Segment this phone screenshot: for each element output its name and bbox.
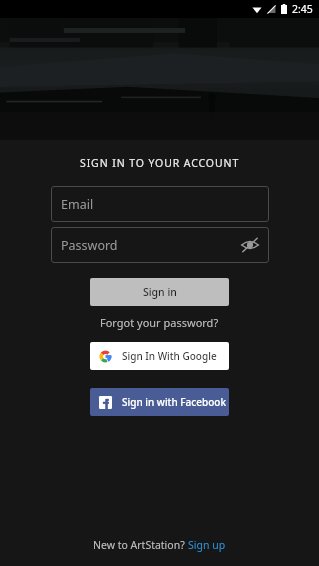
button[interactable]: Show password [239, 234, 261, 256]
button[interactable]: Sign up [188, 538, 226, 552]
button[interactable]: Password [51, 227, 269, 263]
staticText: Sign in with Facebook [122, 395, 226, 409]
staticText: Sign in [143, 285, 177, 299]
button[interactable]: Sign in with Facebook [90, 388, 229, 416]
button[interactable]: Sign in [90, 278, 229, 306]
staticText: Forgot your password? [100, 315, 219, 330]
button[interactable]: Sign In With Google [90, 342, 229, 370]
button[interactable]: Email [51, 186, 269, 222]
staticText: Password [61, 237, 118, 254]
button[interactable]: Forgot your password? [96, 313, 223, 332]
staticText: 2:45 [292, 2, 313, 16]
staticText: Email [61, 196, 94, 213]
staticText: New to ArtStation? [93, 538, 188, 552]
staticText: Sign In With Google [122, 349, 217, 363]
staticText: SIGN IN TO YOUR ACCOUNT [80, 156, 240, 170]
staticText: Sign up [188, 538, 226, 552]
